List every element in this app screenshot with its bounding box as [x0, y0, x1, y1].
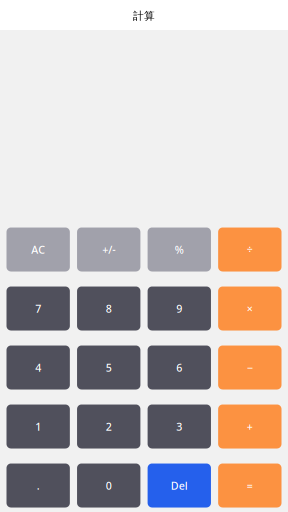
staticText: 2: [106, 419, 112, 434]
button[interactable]: ÷: [218, 227, 281, 271]
button[interactable]: 1: [6, 404, 70, 448]
staticText: 5: [106, 360, 112, 375]
button[interactable]: 7: [6, 286, 70, 330]
staticText: 6: [176, 360, 182, 375]
staticText: .: [37, 478, 40, 493]
button[interactable]: AC: [6, 227, 70, 271]
staticText: =: [247, 478, 253, 493]
button[interactable]: 3: [148, 404, 211, 448]
staticText: 9: [176, 301, 182, 316]
staticText: 0: [106, 478, 112, 493]
staticText: 3: [176, 419, 182, 434]
staticText: ÷: [247, 242, 253, 257]
staticText: 8: [106, 301, 112, 316]
button[interactable]: 0: [77, 463, 140, 507]
button[interactable]: 2: [77, 404, 140, 448]
button[interactable]: +: [218, 404, 281, 448]
staticText: +: [247, 419, 253, 434]
staticText: ×: [247, 301, 253, 316]
staticText: 1: [35, 419, 41, 434]
staticText: Del: [171, 478, 188, 493]
staticText: AC: [31, 242, 45, 257]
staticText: 計算: [133, 9, 155, 22]
button[interactable]: Del: [148, 463, 211, 507]
button[interactable]: ×: [218, 286, 281, 330]
staticText: 4: [35, 360, 41, 375]
staticText: %: [175, 242, 184, 257]
button[interactable]: −: [218, 345, 281, 389]
button[interactable]: 8: [77, 286, 140, 330]
staticText: −: [247, 360, 253, 375]
button[interactable]: 6: [148, 345, 211, 389]
button[interactable]: 4: [6, 345, 70, 389]
button[interactable]: 9: [148, 286, 211, 330]
button[interactable]: =: [218, 463, 281, 507]
button[interactable]: .: [6, 463, 70, 507]
staticText: +/-: [102, 242, 115, 257]
button[interactable]: +/-: [77, 227, 140, 271]
staticText: 7: [35, 301, 41, 316]
button[interactable]: %: [148, 227, 211, 271]
button[interactable]: 5: [77, 345, 140, 389]
